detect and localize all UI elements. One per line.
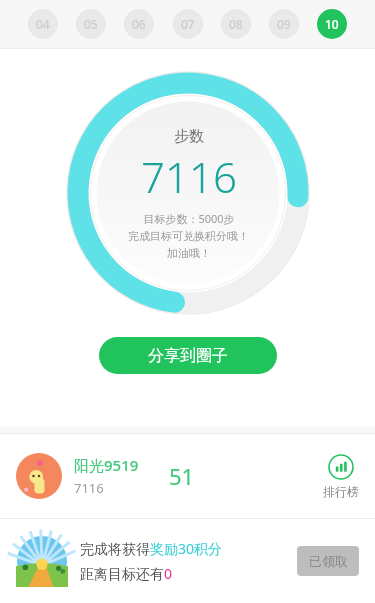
button[interactable]: 08: [221, 9, 251, 39]
staticText: 阳光9519: [74, 455, 139, 475]
staticText: 排行榜: [323, 484, 359, 499]
staticText: 04: [36, 16, 50, 32]
staticText: 完成目标可兑换积分哦！: [128, 229, 249, 243]
button[interactable]: 06: [124, 9, 154, 39]
staticText: 10: [325, 16, 339, 32]
staticText: 加油哦！: [167, 246, 211, 260]
staticText: 步数: [174, 127, 204, 146]
staticText: 距离目标还有0: [80, 564, 173, 583]
button[interactable]: 09: [269, 9, 299, 39]
staticText: 09: [277, 16, 291, 32]
staticText: 05: [84, 16, 98, 32]
staticText: 06: [132, 16, 146, 32]
button[interactable]: 完成将获得奖励30积分: [0, 519, 375, 603]
button[interactable]: 07: [173, 9, 203, 39]
staticText: 完成将获得奖励30积分: [80, 539, 223, 558]
staticText: 51: [169, 461, 195, 491]
button[interactable]: 分享到圈子: [99, 337, 277, 374]
button[interactable]: 04: [28, 9, 58, 39]
button[interactable]: 05: [76, 9, 106, 39]
button[interactable]: 阳光9519: [0, 434, 375, 518]
staticText: 7116: [141, 148, 237, 205]
staticText: 7116: [74, 479, 104, 497]
staticText: 07: [181, 16, 195, 32]
staticText: 分享到圈子: [148, 346, 228, 366]
staticText: 08: [229, 16, 243, 32]
staticText: 已领取: [309, 553, 348, 569]
button[interactable]: 10: [317, 9, 347, 39]
staticText: 目标步数：5000步: [143, 211, 235, 226]
button[interactable]: 已领取: [297, 546, 359, 576]
button[interactable]: 排行榜: [323, 454, 359, 499]
